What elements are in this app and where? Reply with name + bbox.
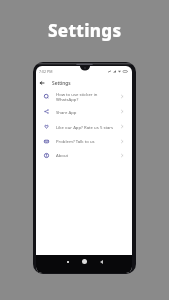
button[interactable]: Back: [38, 79, 46, 87]
button[interactable]: Home: [79, 256, 90, 267]
button[interactable]: Recents: [62, 256, 73, 267]
staticText: Problem? Talk to us: [56, 138, 121, 144]
staticText: Settings: [48, 19, 122, 42]
staticText: 7:02 PM: [39, 69, 53, 74]
staticText: Share App: [56, 109, 121, 115]
button[interactable]: About: [36, 148, 132, 162]
staticText: Like our App? Rate us 5 stars: [56, 124, 121, 130]
button[interactable]: Problem? Talk to us: [36, 134, 132, 148]
button[interactable]: How to use sticker in WhatsApp?: [36, 88, 132, 104]
button[interactable]: Share App: [36, 104, 132, 119]
button[interactable]: Back: [96, 256, 107, 267]
staticText: Settings: [52, 80, 71, 87]
staticText: How to use sticker in WhatsApp?: [56, 91, 121, 102]
staticText: About: [56, 152, 121, 158]
button[interactable]: Like our App? Rate us 5 stars: [36, 119, 132, 134]
